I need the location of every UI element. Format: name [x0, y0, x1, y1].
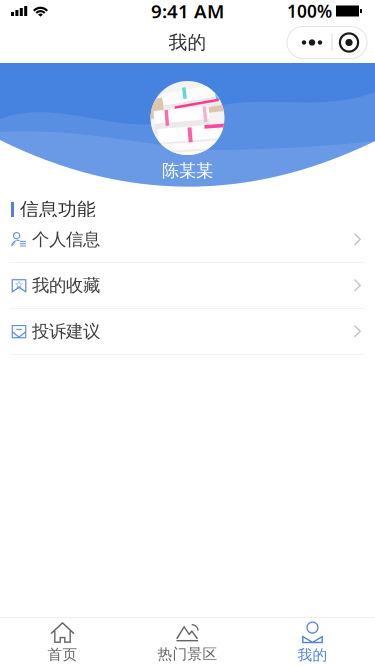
button[interactable]: 个人信息 [0, 217, 375, 263]
button[interactable]: 我的收藏 [0, 263, 375, 309]
staticText: 我的 [297, 646, 327, 664]
button[interactable]: 我的 [250, 618, 375, 667]
staticText: 9:41 AM [151, 0, 224, 23]
staticText: 个人信息 [32, 229, 100, 250]
staticText: 我的收藏 [32, 275, 100, 296]
staticText: 我的 [168, 31, 206, 54]
staticText: 首页 [47, 645, 77, 663]
staticText: 100% [287, 0, 332, 22]
staticText: 信息功能 [20, 198, 96, 221]
button[interactable]: 首页 [0, 618, 125, 667]
staticText: 陈某某 [162, 160, 213, 181]
button[interactable]: 热门景区 [125, 618, 250, 667]
button[interactable]: 投诉建议 [0, 309, 375, 355]
staticText: 热门景区 [157, 645, 217, 663]
button[interactable]: More options [287, 26, 367, 58]
staticText: 投诉建议 [32, 321, 100, 342]
